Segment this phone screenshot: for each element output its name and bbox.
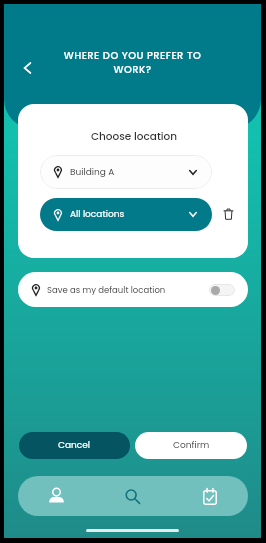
- staticText: Confirm: [173, 439, 210, 452]
- staticText: All locations: [70, 208, 189, 221]
- button[interactable]: Cancel: [19, 432, 130, 459]
- staticText: Save as my default location: [47, 284, 209, 296]
- button[interactable]: Search: [94, 476, 171, 516]
- button[interactable]: Back: [13, 53, 42, 82]
- button[interactable]: Building A: [40, 155, 212, 189]
- staticText: Building A: [70, 166, 189, 179]
- button[interactable]: Confirm: [135, 432, 247, 459]
- button[interactable]: Profile: [18, 476, 94, 516]
- button[interactable]: Delete: [214, 200, 242, 228]
- button[interactable]: Calendar: [171, 476, 248, 516]
- staticText: Choose location: [19, 129, 248, 144]
- button[interactable]: Save as my default location: [18, 272, 248, 307]
- button[interactable]: Toggle save as default location: [209, 284, 235, 296]
- staticText: Cancel: [58, 439, 91, 452]
- button[interactable]: All locations: [40, 198, 212, 231]
- staticText: WHERE DO YOU PREFER TO WORK?: [46, 48, 219, 76]
